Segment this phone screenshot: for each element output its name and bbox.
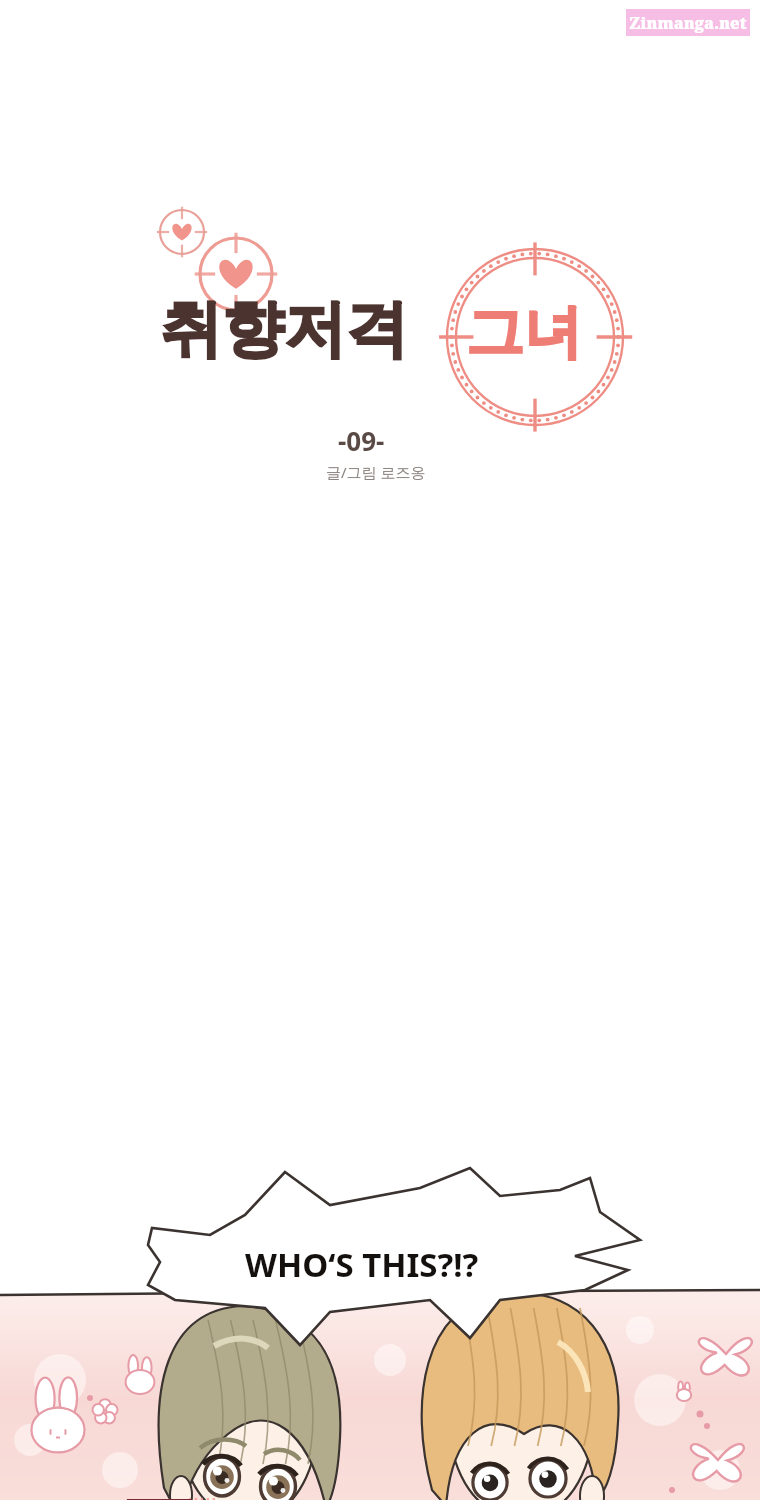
staticText: WHO‘S THIS?!? — [245, 1242, 479, 1287]
button[interactable]: Zinmanga.net watermark — [626, 9, 750, 36]
staticText: 글/그림 로즈옹 — [326, 462, 426, 482]
staticText: -09- — [338, 423, 385, 458]
staticText: 그녀 — [466, 296, 582, 369]
staticText: 취향저격 — [160, 290, 408, 368]
staticText: Zinmanga.net — [629, 12, 747, 34]
